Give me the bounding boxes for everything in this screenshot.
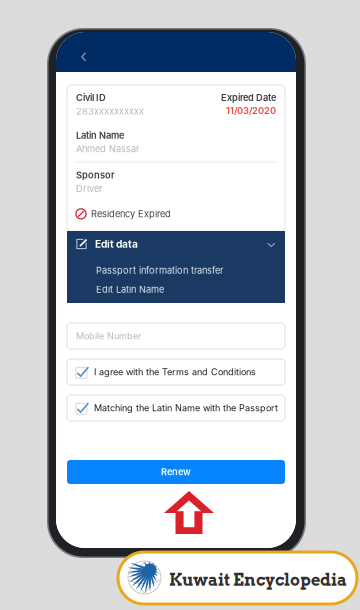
staticText: Matching the Latin Name with the Passpor… — [94, 403, 278, 413]
staticText: Residency Expired — [91, 208, 171, 219]
staticText: Passport information transfer — [96, 265, 223, 276]
button[interactable]: Back — [71, 42, 105, 76]
staticText: Sponsor — [76, 169, 115, 181]
staticText: Mobile Number — [76, 330, 141, 341]
staticText: Ahmed Nassar — [76, 143, 139, 154]
button[interactable]: Edit Latin Name — [67, 280, 285, 299]
staticText: Edit Latin Name — [96, 284, 164, 295]
staticText: Latin Name — [76, 130, 124, 141]
button[interactable]: Matching the Latin Name with the Passpor… — [67, 395, 285, 421]
staticText: 11/03/2020 — [226, 105, 276, 116]
staticText: Civil ID — [76, 92, 106, 103]
button[interactable]: Edit data — [67, 227, 285, 261]
staticText: Renew — [161, 466, 191, 477]
button[interactable]: Renew — [67, 460, 285, 484]
staticText: Edit data — [95, 238, 138, 250]
staticText: Driver — [76, 183, 102, 194]
staticText: Expired Date — [221, 92, 276, 103]
button[interactable]: Passport information transfer — [67, 261, 285, 280]
staticText: 283xxxxxxxxxx — [76, 106, 144, 117]
staticText: I agree with the Terms and Conditions — [94, 367, 256, 377]
button[interactable]: I agree with the Terms and Conditions — [67, 359, 285, 385]
staticText: Kuwait Encyclopedia — [169, 570, 347, 590]
